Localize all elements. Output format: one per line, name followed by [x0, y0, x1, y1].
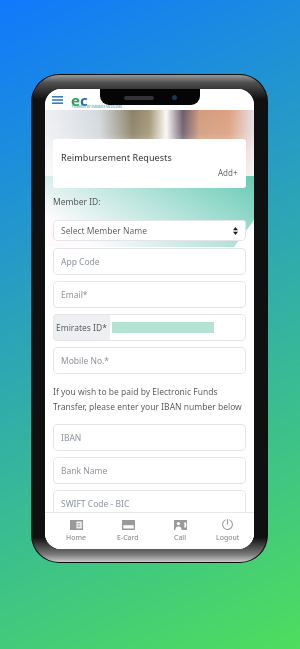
staticText: Emirates ID*: [56, 322, 107, 334]
staticText: POWERED BY EMIRATES MEDILINKS: [72, 105, 123, 109]
button[interactable]: Home: [50, 513, 102, 549]
staticText: Add+: [218, 167, 238, 178]
staticText: Logout: [216, 533, 240, 543]
staticText: Mobile No.*: [61, 355, 110, 367]
staticText: Bank Name: [61, 465, 108, 477]
button[interactable]: SWIFT Code - BIC: [53, 490, 246, 517]
button[interactable]: IBAN: [53, 424, 246, 451]
button[interactable]: Menu: [52, 96, 63, 104]
button[interactable]: Logout: [206, 513, 249, 549]
button[interactable]: Reimbursement Requests: [53, 139, 246, 188]
button[interactable]: Bank Name: [53, 457, 246, 484]
staticText: Call: [174, 533, 186, 543]
button[interactable]: Mobile No.*: [53, 347, 246, 374]
button[interactable]: Email*: [53, 281, 246, 308]
staticText: App Code: [61, 256, 100, 268]
staticText: E-Card: [117, 533, 139, 543]
staticText: Member ID:: [53, 196, 101, 208]
staticText: Select Member Name: [61, 225, 147, 237]
staticText: Home: [66, 533, 86, 543]
button[interactable]: Emirates ID*: [53, 314, 246, 341]
staticText: c: [80, 90, 88, 110]
staticText: SWIFT Code - BIC: [61, 498, 130, 510]
staticText: Transfer, please enter your IBAN number …: [53, 401, 242, 413]
staticText: e: [71, 90, 80, 110]
staticText: Reimbursement Requests: [61, 151, 172, 163]
staticText: IBAN: [61, 432, 82, 444]
staticText: Email*: [61, 289, 88, 301]
button[interactable]: E-Card: [102, 513, 154, 549]
staticText: If you wish to be paid by Electronic Fun…: [53, 386, 218, 398]
button[interactable]: Select Member Name: [53, 220, 246, 241]
button[interactable]: App Code: [53, 248, 246, 275]
button[interactable]: Call: [154, 513, 206, 549]
